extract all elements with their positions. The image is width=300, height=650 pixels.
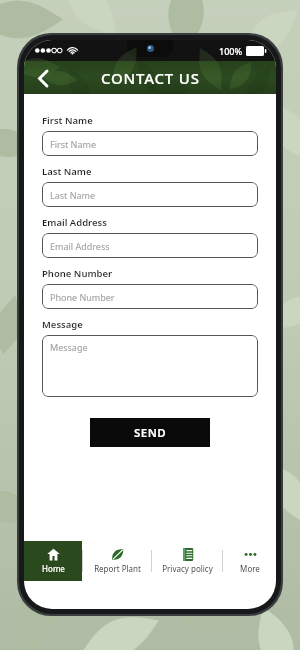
staticText: First Name xyxy=(50,138,96,150)
staticText: Privacy policy xyxy=(162,563,213,574)
staticText: Phone Number xyxy=(50,291,115,303)
staticText: Email Address xyxy=(42,216,107,229)
button[interactable]: Message xyxy=(42,335,258,397)
button[interactable]: SEND xyxy=(90,418,210,447)
staticText: SEND xyxy=(134,425,167,441)
staticText: Message xyxy=(42,318,83,331)
staticText: CONTACT US xyxy=(101,68,200,88)
button[interactable]: Privacy policy xyxy=(152,541,222,581)
button[interactable]: More xyxy=(223,541,276,581)
button[interactable]: Email Address xyxy=(42,233,258,258)
button[interactable]: First Name xyxy=(42,131,258,156)
staticText: Phone Number xyxy=(42,267,113,280)
staticText: More xyxy=(240,563,260,574)
button[interactable]: Home xyxy=(24,541,82,581)
button[interactable]: Phone Number xyxy=(42,284,258,309)
button[interactable]: Report Plant xyxy=(83,541,151,581)
staticText: Last Name xyxy=(50,189,96,201)
staticText: First Name xyxy=(42,114,93,127)
staticText: Last Name xyxy=(42,165,92,178)
staticText: Report Plant xyxy=(94,563,141,574)
staticText: Message xyxy=(50,341,88,353)
button[interactable]: Last Name xyxy=(42,182,258,207)
staticText: 100% xyxy=(219,45,243,57)
button[interactable]: Back xyxy=(28,63,58,93)
staticText: Email Address xyxy=(50,240,110,252)
staticText: Home xyxy=(42,563,65,574)
